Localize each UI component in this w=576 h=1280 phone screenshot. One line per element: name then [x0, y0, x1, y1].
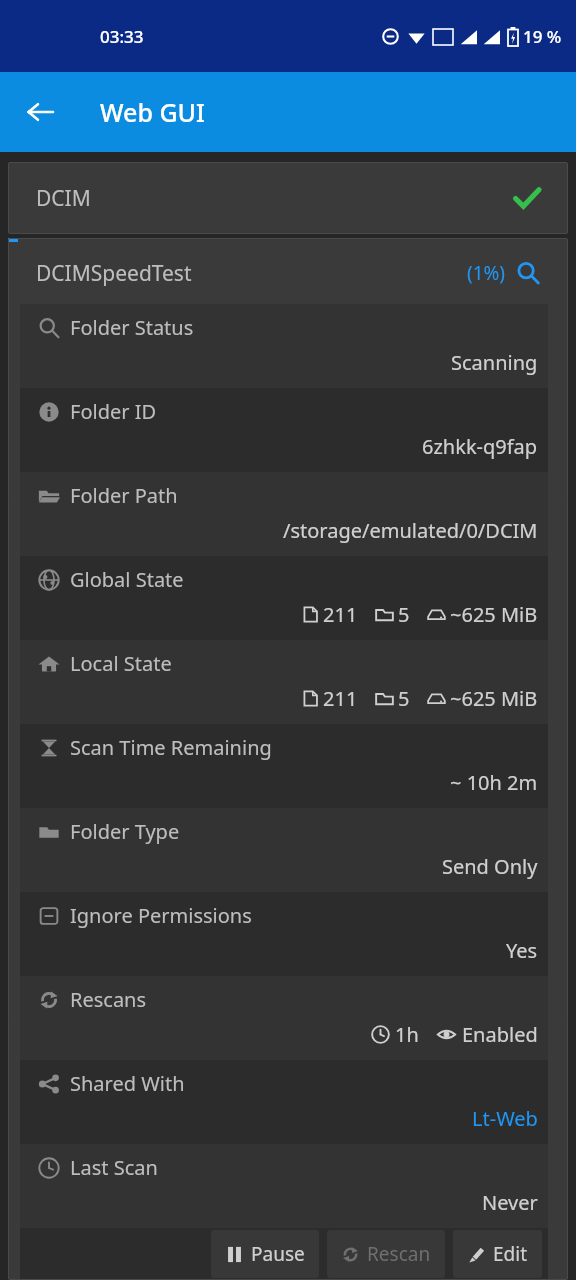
staticText: Rescan	[367, 1241, 431, 1267]
staticText: Last Scan	[70, 1154, 158, 1181]
staticText: DCIMSpeedTest	[36, 259, 192, 288]
button[interactable]: Folder ID	[20, 388, 548, 472]
staticText: (1%)	[467, 260, 506, 286]
button[interactable]: Rescans	[20, 976, 548, 1060]
button[interactable]: Last Scan	[20, 1144, 548, 1228]
staticText: Folder Status	[70, 314, 194, 341]
button[interactable]: Shared With	[20, 1060, 548, 1144]
staticText: 6zhkk-q9fap	[422, 433, 538, 460]
staticText: Scanning	[451, 349, 538, 376]
staticText: Scan Time Remaining	[70, 734, 272, 761]
button[interactable]: DCIM	[8, 162, 568, 234]
button[interactable]: Scan Time Remaining	[20, 724, 548, 808]
staticText: Local State	[70, 650, 172, 677]
staticText: /storage/emulated/0/DCIM	[283, 517, 538, 544]
staticText: Send Only	[442, 853, 538, 880]
staticText: Ignore Permissions	[70, 902, 252, 929]
staticText: Lt-Web	[472, 1105, 538, 1132]
staticText: 03:33	[100, 25, 144, 48]
staticText: Edit	[493, 1241, 528, 1267]
staticText: Never	[482, 1189, 538, 1216]
button[interactable]: Edit	[453, 1230, 542, 1278]
staticText: Yes	[506, 937, 538, 964]
staticText: Enabled	[462, 1021, 538, 1048]
button[interactable]: Global State	[20, 556, 548, 640]
staticText: DCIM	[36, 184, 91, 213]
staticText: Web GUI	[100, 95, 205, 129]
button[interactable]: Ignore Permissions	[20, 892, 548, 976]
staticText: ~ 10h 2m	[450, 769, 538, 796]
staticText: Shared With	[70, 1070, 185, 1097]
button[interactable]: Folder Type	[20, 808, 548, 892]
staticText: Rescans	[70, 986, 147, 1013]
staticText: Folder Path	[70, 482, 178, 509]
button[interactable]: Pause	[211, 1230, 319, 1278]
staticText: Pause	[251, 1241, 305, 1267]
staticText: Folder Type	[70, 818, 180, 845]
staticText: 1h	[395, 1021, 419, 1048]
staticText: 5	[398, 685, 410, 712]
staticText: 5	[398, 601, 410, 628]
button[interactable]: Folder Status	[20, 304, 548, 388]
staticText: 211	[323, 685, 358, 712]
staticText: Global State	[70, 566, 184, 593]
staticText: 211	[323, 601, 358, 628]
staticText: Folder ID	[70, 398, 157, 425]
button[interactable]: Back	[12, 84, 68, 140]
button[interactable]: DCIMSpeedTest	[8, 242, 568, 304]
button[interactable]: Folder Path	[20, 472, 548, 556]
button[interactable]: Rescan	[327, 1230, 445, 1278]
staticText: ~625 MiB	[450, 685, 538, 712]
other: Scanning	[516, 261, 540, 285]
staticText: 19 %	[523, 25, 562, 48]
staticText: ~625 MiB	[450, 601, 538, 628]
button[interactable]: Local State	[20, 640, 548, 724]
